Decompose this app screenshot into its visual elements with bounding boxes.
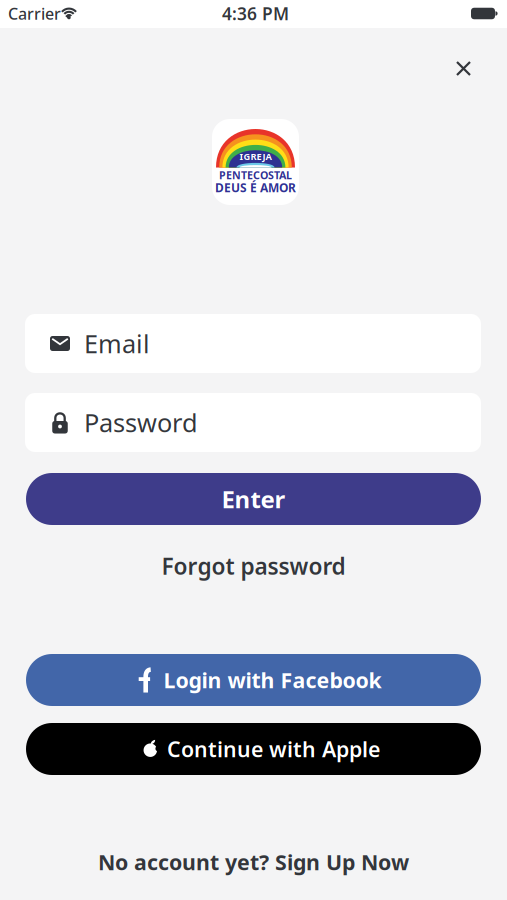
- button[interactable]: Email: [25, 314, 481, 373]
- button[interactable]: [452, 57, 474, 79]
- button[interactable]: Password: [25, 393, 481, 452]
- staticText: Enter: [221, 483, 285, 515]
- staticText: Forgot password: [161, 551, 345, 581]
- staticText: PENTECOSTAL: [219, 168, 292, 182]
- staticText: IGREJA: [239, 150, 271, 163]
- staticText: Carrier: [8, 3, 61, 24]
- staticText: Password: [84, 406, 198, 439]
- staticText: No account yet? Sign Up Now: [98, 848, 409, 876]
- staticText: Login with Facebook: [163, 666, 381, 694]
- button[interactable]: Continue with Apple: [26, 723, 481, 775]
- staticText: Email: [84, 327, 150, 360]
- button[interactable]: Login with Facebook: [26, 654, 481, 706]
- button[interactable]: Enter: [26, 473, 481, 525]
- button[interactable]: Forgot password: [161, 551, 345, 581]
- staticText: 4:36 PM: [222, 2, 289, 25]
- staticText: Continue with Apple: [167, 735, 380, 763]
- staticText: DEUS É AMOR: [215, 179, 296, 195]
- button[interactable]: No account yet? Sign Up Now: [98, 848, 409, 876]
